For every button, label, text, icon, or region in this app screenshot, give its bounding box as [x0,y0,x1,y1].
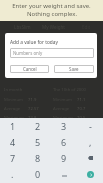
staticText: 3 [61,120,67,132]
button[interactable]: 1 [0,118,25,134]
staticText: In month [4,87,23,93]
button[interactable]: 0 [25,166,51,182]
button[interactable]: , [77,134,103,150]
staticText: 70.5 [77,115,86,121]
staticText: 4 [10,136,16,148]
staticText: My Weight [42,24,65,30]
staticText: 5 [35,136,41,148]
button[interactable]: 9 [51,150,77,166]
button[interactable]: Numbers only [10,48,94,58]
staticText: Cancel [23,66,37,72]
button[interactable]: Backspace [77,150,103,166]
button[interactable]: Cancel [10,65,49,73]
button[interactable]: Save [54,65,94,73]
other: Enter [87,171,94,178]
staticText: 2 [35,120,41,132]
button[interactable]: Space [51,166,77,182]
staticText: 73.8 [28,115,37,121]
staticText: 72.57 [28,106,39,112]
staticText: 71.9 [28,97,37,103]
staticText: 0 [35,168,41,180]
staticText: 7 [10,152,16,164]
staticText: LbsSlim [14,24,31,30]
button[interactable]: 7 [0,150,25,166]
button[interactable]: 2 [25,118,51,134]
staticText: Enter your weight and save. [12,2,91,10]
button[interactable]: 6 [51,134,77,150]
button[interactable]: - [77,118,103,134]
staticText: Maximum [4,115,24,121]
staticText: Average [53,106,70,112]
staticText: The 10th of 2000 [53,87,86,93]
other: Backspace [88,156,93,160]
button[interactable]: . [0,166,25,182]
staticText: Minimum [53,97,72,103]
button[interactable]: 8 [25,150,51,166]
staticText: Add a value for today [10,39,58,46]
staticText: Maximum [53,115,73,121]
staticText: 6 [61,136,67,148]
other: Space [62,174,67,178]
staticText: - [89,120,92,132]
staticText: Average [4,106,21,112]
staticText: Nothing complex. [27,10,77,18]
staticText: 71.1 [77,97,86,103]
staticText: 1 [10,120,16,132]
staticText: Minimum [4,97,23,103]
button[interactable]: 3 [51,118,77,134]
staticText: . [11,168,14,180]
staticText: 9 [61,152,67,164]
button[interactable]: 4 [0,134,25,150]
button[interactable]: Enter [77,166,103,182]
staticText: Save [69,66,79,72]
button[interactable]: 5 [25,134,51,150]
staticText: , [89,136,92,148]
staticText: 70.7 [77,106,86,112]
staticText: 8 [35,152,41,164]
staticText: Numbers only [13,50,43,56]
